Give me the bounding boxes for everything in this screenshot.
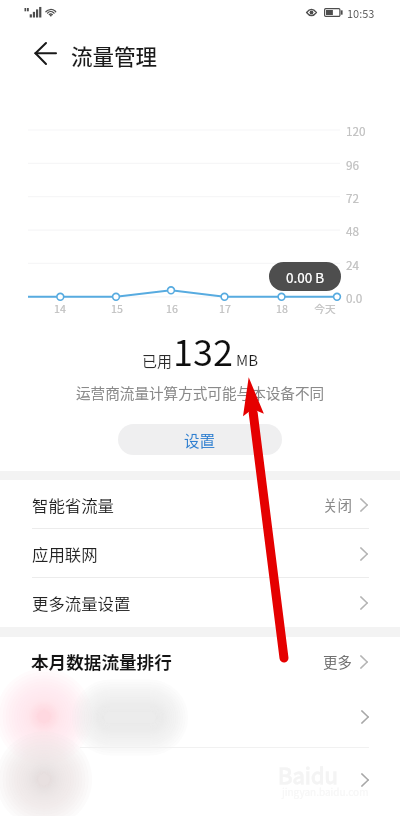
staticText: 72 [346, 189, 360, 206]
staticText: 已用 [142, 350, 173, 372]
staticText: 18 [262, 301, 302, 316]
staticText: 今天 [305, 301, 345, 316]
staticText: 运营商流量计算方式可能与本设备不同 [76, 382, 325, 403]
staticText: 24 [346, 256, 360, 273]
staticText: 17 [205, 301, 245, 316]
button[interactable]: Back [24, 36, 68, 72]
button[interactable]: 应用联网 [0, 529, 400, 578]
staticText: 48 [346, 222, 360, 239]
staticText: 设置 [184, 429, 216, 451]
staticText: 0.00 B [286, 267, 325, 287]
staticText: 14 [40, 301, 80, 316]
staticText: 本月数据流量排行 [31, 649, 172, 674]
staticText: 更多流量设置 [32, 591, 131, 615]
staticText: 智能省流量 [32, 493, 114, 517]
button[interactable] [0, 748, 400, 811]
button[interactable] [0, 685, 400, 748]
button[interactable]: 更多流量设置 [0, 578, 400, 627]
button[interactable]: 设置 [118, 424, 282, 455]
staticText: 96 [346, 156, 360, 173]
staticText: Baidu [278, 758, 338, 790]
staticText: 120 [346, 122, 366, 139]
staticText: 10:53 [347, 5, 375, 21]
staticText: 流量管理 [71, 40, 158, 71]
staticText: 15 [97, 301, 137, 316]
staticText: MB [236, 349, 259, 371]
button[interactable]: 智能省流量 [0, 480, 400, 529]
staticText: 132 [173, 324, 233, 376]
staticText: 应用联网 [32, 542, 98, 566]
staticText: 16 [152, 301, 192, 316]
button[interactable]: 本月数据流量排行 [0, 637, 400, 685]
staticText: jingyan.baidu.com [282, 784, 369, 798]
staticText: 0.0 [346, 289, 363, 306]
staticText: 更多 [323, 651, 352, 672]
staticText: 关闭 [323, 494, 352, 515]
